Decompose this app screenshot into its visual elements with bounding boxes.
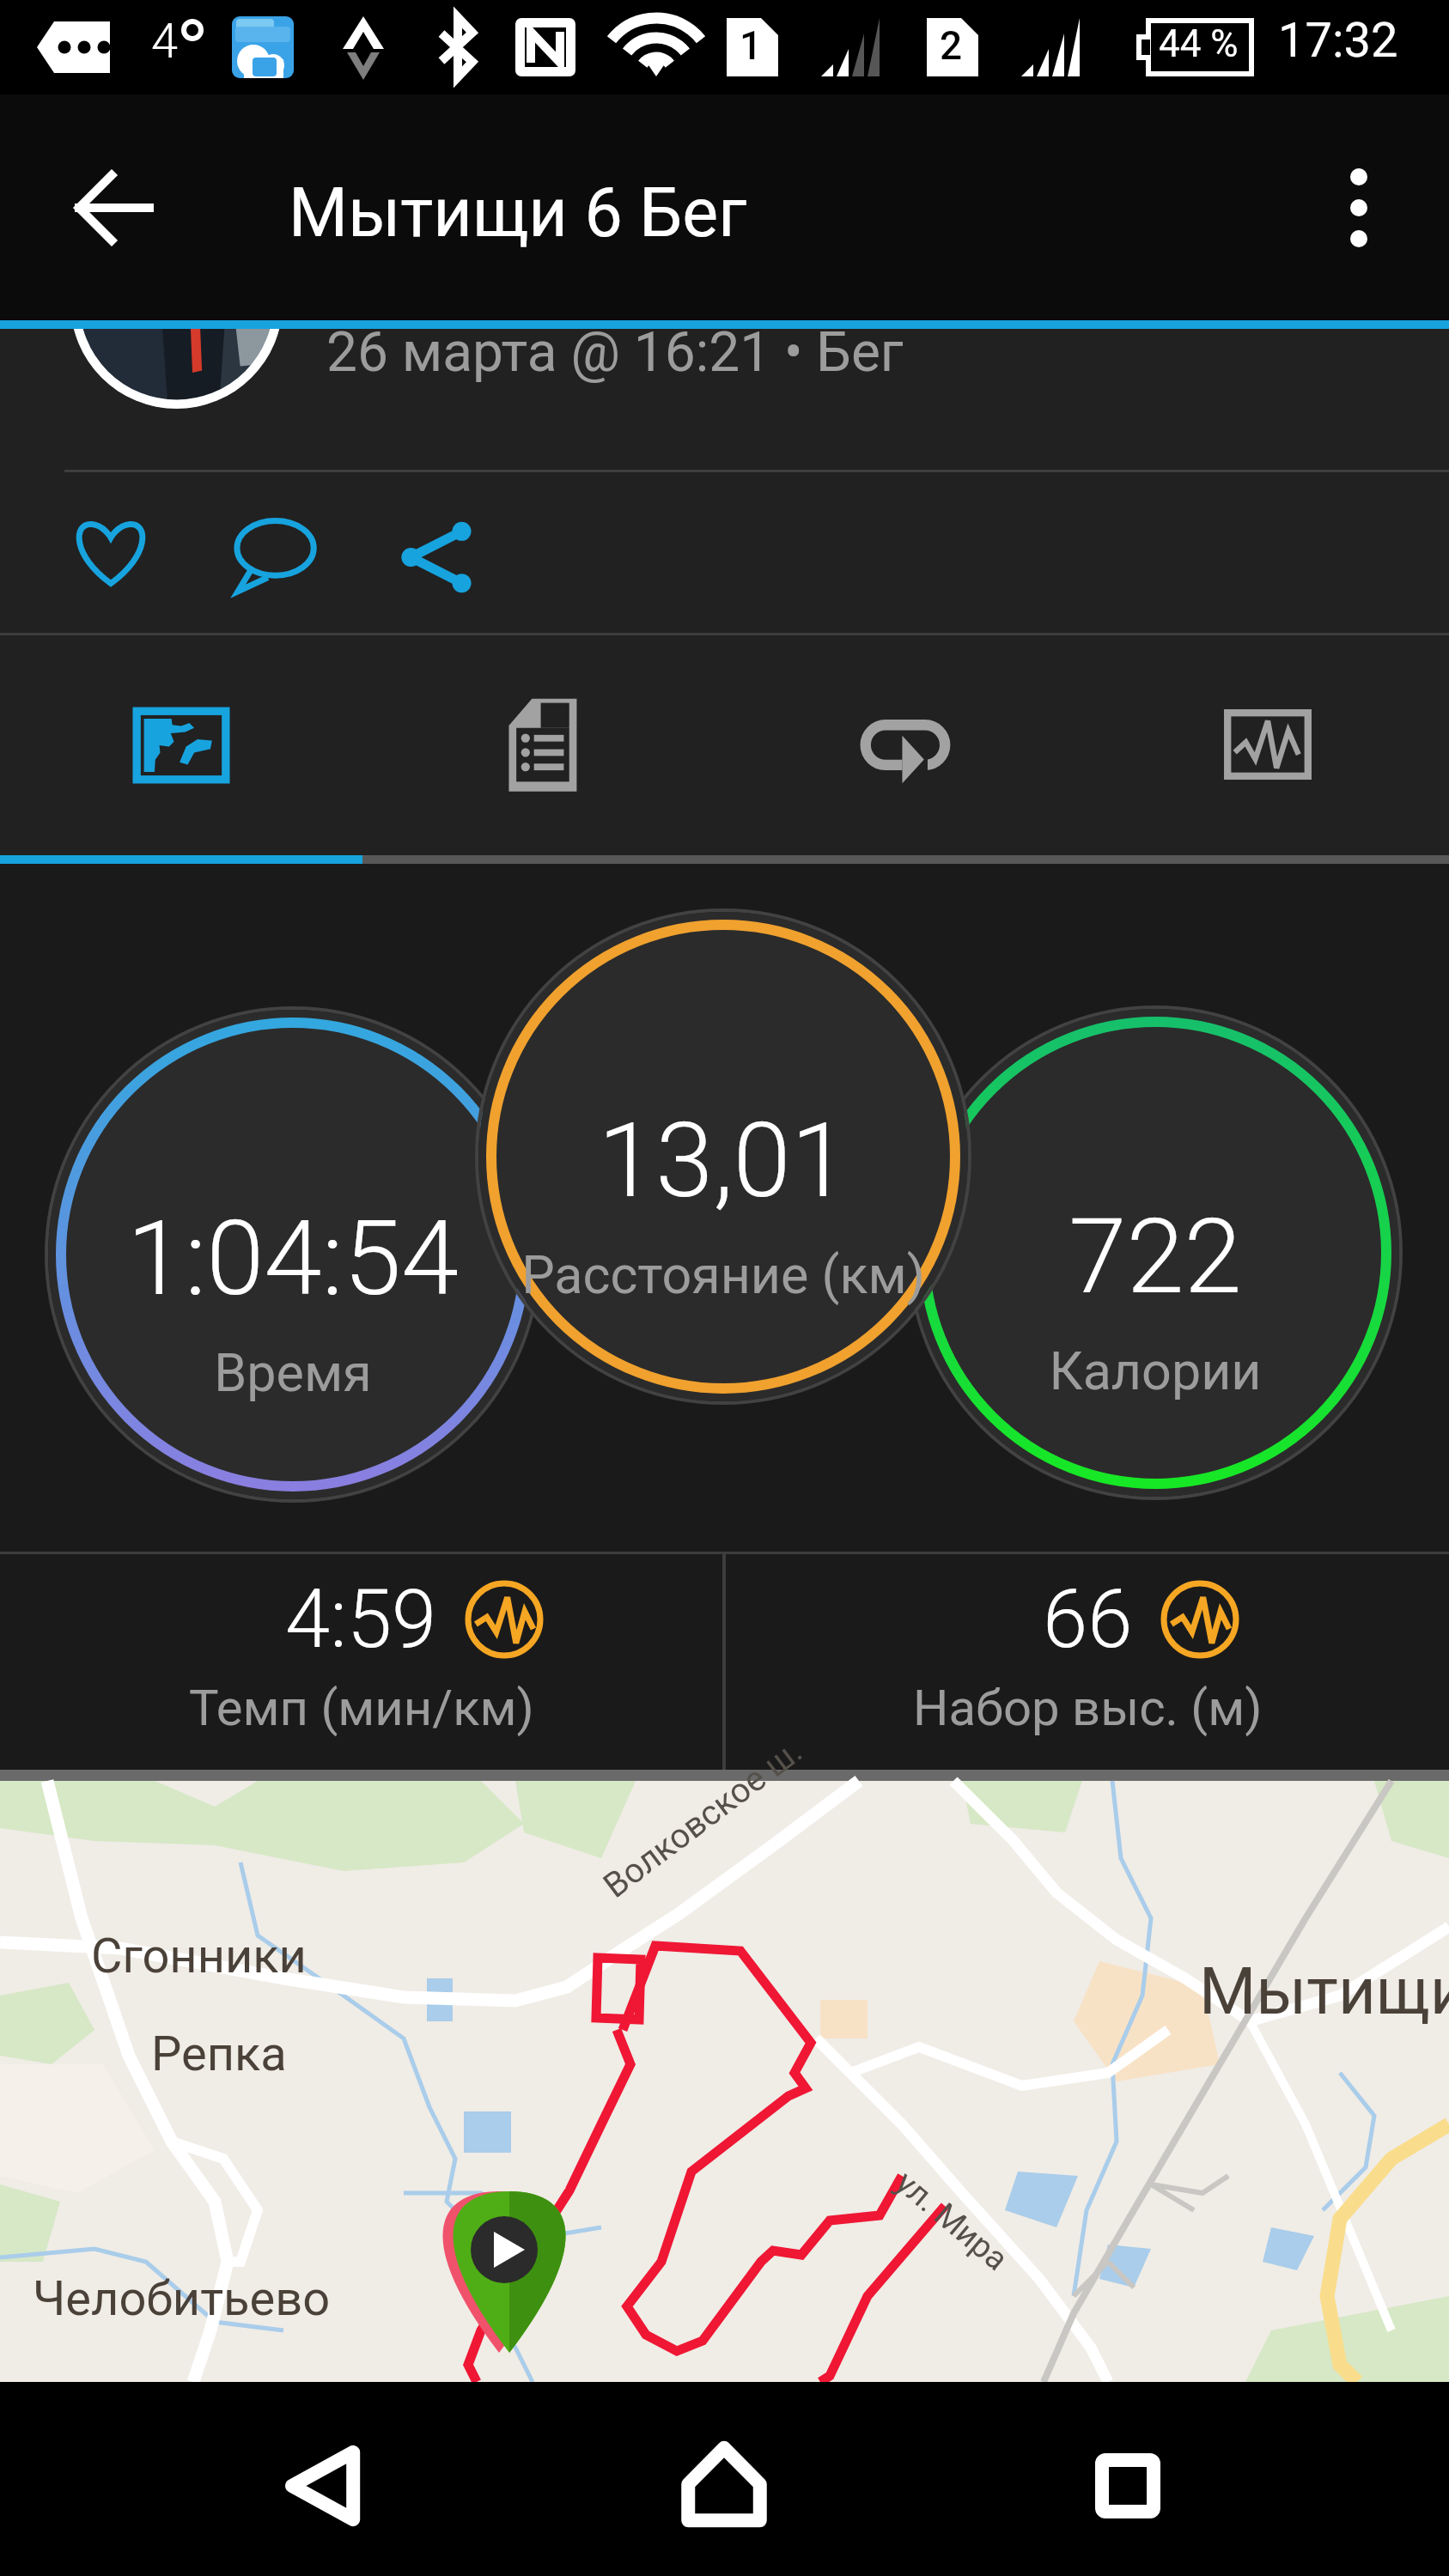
button[interactable]: 13,01 [474, 1100, 972, 1305]
staticText: Мытищи [1199, 1953, 1449, 2029]
button[interactable]: Laps [724, 635, 1087, 855]
staticText: 1 [740, 22, 763, 69]
staticText: Челобитьево [33, 2270, 331, 2327]
staticText: Время [44, 1342, 542, 1403]
staticText: 2 [940, 22, 963, 69]
button[interactable]: Like [61, 506, 161, 605]
button[interactable]: Share [390, 507, 490, 607]
button[interactable]: 1:04:54 [44, 1198, 542, 1403]
staticText: 26 марта @ 16:21 • Бег [326, 329, 904, 385]
staticText: Набор выс. (м) [913, 1679, 1263, 1737]
staticText: Сгонники [91, 1928, 307, 1984]
staticText: Калории [906, 1340, 1404, 1401]
staticText: 722 [906, 1196, 1404, 1318]
button[interactable]: 66 [726, 1554, 1449, 1770]
button[interactable]: Home [630, 2396, 819, 2573]
button[interactable]: Details [362, 635, 724, 855]
staticText: Мытищи 6 Бег [289, 173, 747, 253]
staticText: 1:04:54 [44, 1198, 542, 1320]
button[interactable]: Back [228, 2397, 417, 2574]
staticText: 4:59 [285, 1572, 437, 1667]
staticText: ул. Мира [888, 2163, 1015, 2279]
staticText: Расстояние (км) [474, 1244, 972, 1305]
staticText: 66 [1043, 1572, 1133, 1667]
button[interactable]: Back [67, 156, 170, 259]
staticText: 44 % [1159, 21, 1239, 66]
button[interactable]: 4:59 [0, 1554, 722, 1770]
staticText: 17:32 [1278, 12, 1398, 69]
staticText: Волковское ш. [596, 1731, 810, 1906]
button[interactable]: More options [1312, 161, 1406, 255]
staticText: 13,01 [474, 1100, 972, 1222]
button[interactable]: Graphs [1087, 635, 1449, 855]
button[interactable]: Recents [1033, 2397, 1222, 2574]
staticText: 4 [151, 13, 179, 70]
staticText: Репка [151, 2026, 287, 2082]
staticText: Темп (мин/км) [189, 1679, 534, 1737]
button[interactable]: Map [0, 635, 362, 855]
button[interactable]: Comment [225, 506, 325, 605]
button[interactable]: 722 [906, 1196, 1404, 1401]
button[interactable]: Profile photo [70, 329, 283, 409]
